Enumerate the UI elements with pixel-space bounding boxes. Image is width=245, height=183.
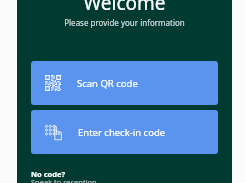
button[interactable]: Enter code (31, 110, 218, 154)
staticText: Please provide your information (17, 17, 232, 28)
staticText: Enter check-in code (78, 126, 166, 139)
staticText: Speak to reception (31, 177, 97, 183)
staticText: No code? (31, 169, 66, 179)
staticText: Welcome (17, 0, 232, 16)
other: Enter code (45, 124, 62, 140)
staticText: Scan QR code (77, 77, 138, 90)
button[interactable]: QR code (31, 61, 218, 105)
other: QR code (45, 75, 61, 91)
